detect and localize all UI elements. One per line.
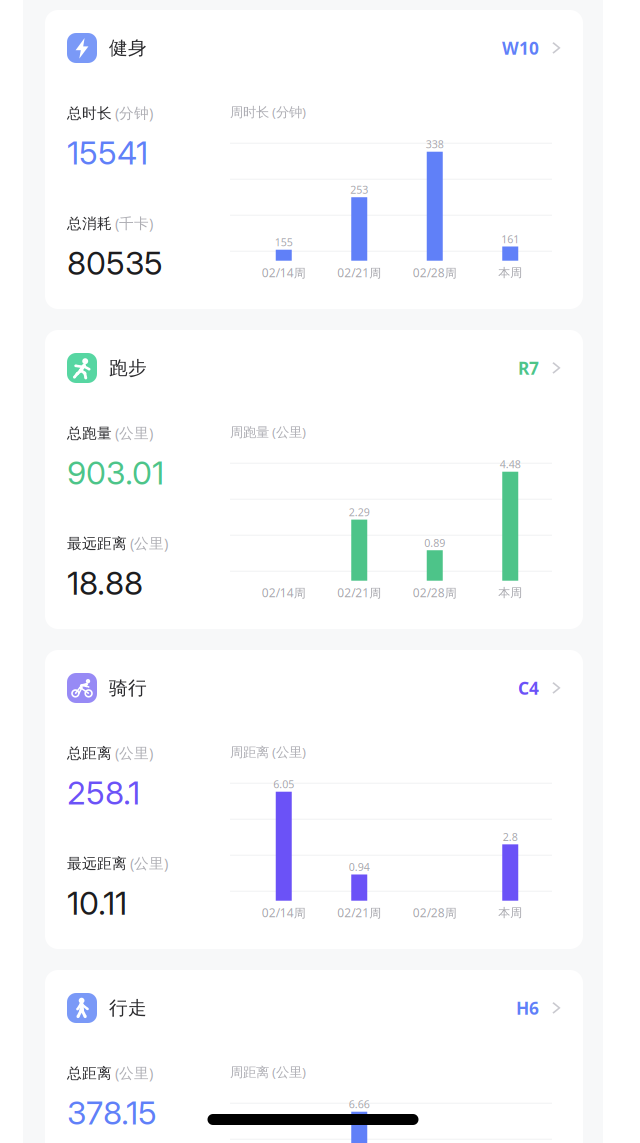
staticText: 本周: [498, 905, 522, 920]
staticText: 02/21周: [337, 585, 381, 601]
staticText: 258.1: [67, 773, 140, 812]
staticText: (公里): [115, 423, 153, 442]
staticText: 最远距离: [67, 855, 127, 873]
staticText: 338: [426, 137, 444, 151]
staticText: 本周: [498, 585, 522, 600]
staticText: 02/28周: [413, 585, 457, 601]
staticText: 2.8: [503, 830, 518, 844]
staticText: 02/28周: [413, 905, 457, 921]
staticText: (千卡): [115, 213, 153, 233]
button[interactable]: 健身: [45, 10, 583, 103]
staticText: 18.88: [67, 564, 143, 602]
button[interactable]: 行走: [45, 970, 583, 1063]
staticText: (分钟): [115, 103, 153, 122]
staticText: 周距离 (公里): [230, 743, 306, 761]
staticText: 4.48: [500, 457, 521, 471]
staticText: 02/14周: [262, 905, 306, 921]
staticText: 02/14周: [262, 265, 306, 281]
staticText: 02/14周: [262, 585, 306, 601]
button[interactable]: 骑行: [45, 650, 583, 743]
staticText: 02/21周: [337, 905, 381, 921]
staticText: (公里): [115, 1063, 153, 1082]
staticText: 总跑量: [67, 424, 112, 442]
staticText: 周时长 (分钟): [230, 103, 306, 121]
button[interactable]: 跑步: [45, 330, 583, 423]
staticText: W10: [502, 36, 539, 59]
staticText: 0.94: [349, 860, 370, 874]
staticText: 0.89: [424, 536, 445, 550]
staticText: R7: [518, 356, 539, 379]
staticText: 健身: [109, 36, 147, 59]
staticText: 15541: [67, 133, 148, 172]
staticText: 02/28周: [413, 265, 457, 281]
staticText: 总消耗: [67, 215, 112, 233]
staticText: H6: [516, 996, 539, 1019]
staticText: 161: [501, 232, 519, 246]
staticText: 253: [350, 183, 368, 197]
staticText: 80535: [67, 244, 163, 282]
staticText: 骑行: [109, 676, 147, 699]
staticText: 155: [275, 235, 293, 249]
staticText: (公里): [130, 853, 168, 873]
staticText: 6.05: [273, 777, 294, 791]
staticText: 378.15: [67, 1093, 157, 1132]
staticText: 跑步: [109, 356, 147, 379]
staticText: 周距离 (公里): [230, 1063, 306, 1081]
staticText: 903.01: [67, 453, 164, 492]
staticText: C4: [518, 676, 539, 699]
staticText: (公里): [115, 743, 153, 762]
staticText: 最远距离: [67, 535, 127, 553]
staticText: 周跑量 (公里): [230, 423, 306, 441]
staticText: 总距离: [67, 1064, 112, 1082]
staticText: 2.29: [349, 505, 370, 519]
staticText: 6.66: [349, 1097, 370, 1111]
staticText: 10.11: [67, 884, 127, 922]
staticText: 总时长: [67, 104, 112, 122]
staticText: 02/21周: [337, 265, 381, 281]
staticText: (公里): [130, 533, 168, 553]
staticText: 总距离: [67, 744, 112, 762]
staticText: 本周: [498, 265, 522, 280]
staticText: 行走: [109, 996, 147, 1019]
